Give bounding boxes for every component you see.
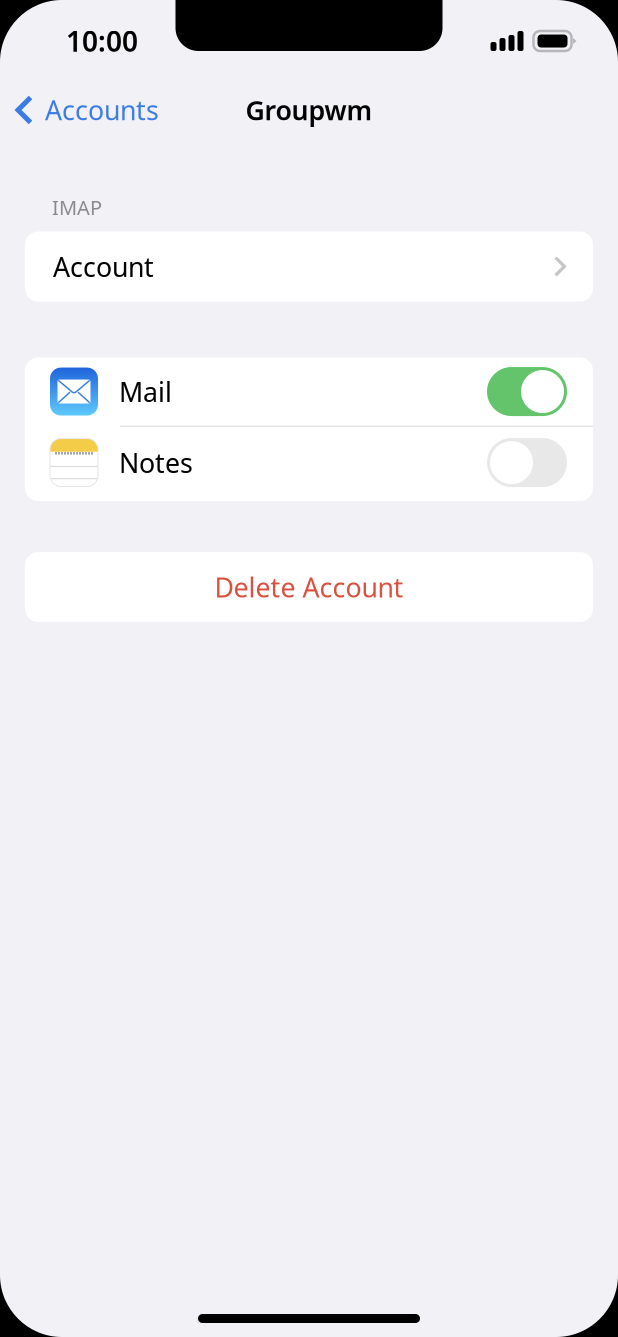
- button[interactable]: Account: [0, 232, 618, 302]
- staticText: Accounts: [45, 92, 159, 128]
- staticText: IMAP: [52, 194, 102, 221]
- button[interactable]: Mail: [25, 358, 593, 426]
- staticText: Delete Account: [214, 569, 403, 605]
- button[interactable]: Accounts: [0, 83, 171, 137]
- staticText: Notes: [119, 445, 193, 480]
- staticText: 10:00: [66, 22, 138, 60]
- staticText: Mail: [119, 374, 172, 409]
- button[interactable]: Notes: [25, 427, 593, 501]
- staticText: Groupwm: [245, 92, 372, 128]
- button[interactable]: Delete Account: [0, 552, 618, 622]
- staticText: Account: [53, 249, 154, 284]
